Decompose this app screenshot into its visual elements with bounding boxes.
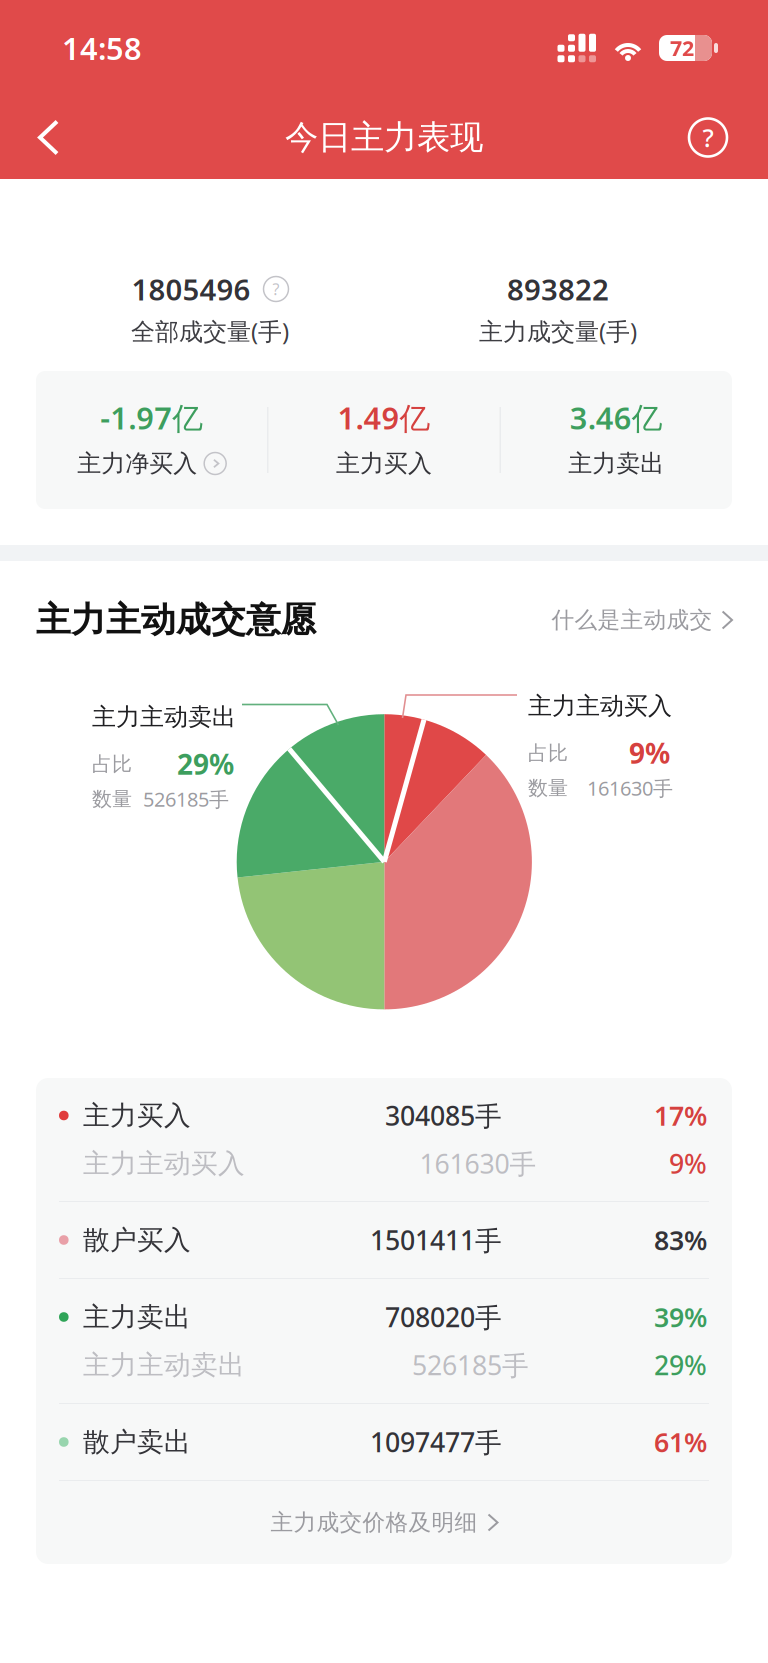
staticText: 全部成交量(手) [131,315,289,347]
staticText: 9% [629,734,670,772]
staticText: 83% [654,1222,707,1258]
staticText: 1805496 [131,269,250,308]
staticText: 72 [670,34,694,62]
staticText: 主力卖出 [83,1301,191,1333]
staticText: 占比 [528,741,568,765]
staticText: 什么是主动成交 [552,606,713,634]
staticText: 散户买入 [83,1224,191,1256]
button[interactable]: 什么是主动成交 [552,603,732,637]
staticText: 1.49亿 [337,397,430,438]
staticText: 主力主动卖出 [83,1349,245,1381]
staticText: 散户卖出 [83,1426,191,1458]
staticText: 304085手 [385,1098,502,1133]
staticText: 主力主动买入 [528,691,672,721]
button[interactable]: 主力成交价格及明细 [36,1481,732,1564]
staticText: 主力主动买入 [83,1147,245,1180]
staticText: 29% [177,745,234,783]
staticText: 893822 [507,269,609,308]
staticText: -1.97亿 [100,397,203,438]
staticText: 3.46亿 [570,397,663,438]
button[interactable]: 返回 [0,97,87,177]
staticText: 主力成交价格及明细 [270,1509,477,1536]
staticText: 39% [654,1299,707,1335]
staticText: 161630手 [587,775,673,801]
staticText: 占比 [92,752,132,776]
staticText: 526185手 [412,1347,529,1383]
staticText: 数量 [528,776,568,800]
staticText: 主力净买入 [77,449,197,478]
staticText: 526185手 [143,786,229,812]
staticText: 主力主动卖出 [92,702,236,732]
staticText: 今日主力表现 [285,117,483,158]
staticText: ? [702,121,713,154]
staticText: 数量 [92,787,132,811]
staticText: 主力买入 [83,1099,191,1132]
staticText: 1501411手 [370,1222,502,1258]
button[interactable]: 帮助 [680,109,768,165]
staticText: ? [272,278,279,300]
staticText: 主力买入 [336,449,432,478]
staticText: 9% [669,1146,707,1181]
staticText: 17% [654,1098,707,1133]
staticText: 主力卖出 [568,449,664,478]
staticText: 1097477手 [370,1424,502,1460]
staticText: 14:58 [62,28,142,68]
staticText: 708020手 [385,1299,502,1335]
staticText: 61% [654,1424,707,1460]
staticText: 主力成交量(手) [479,315,637,347]
staticText: 161630手 [419,1146,536,1181]
staticText: 29% [654,1347,707,1383]
staticText: 主力主动成交意愿 [36,599,316,641]
